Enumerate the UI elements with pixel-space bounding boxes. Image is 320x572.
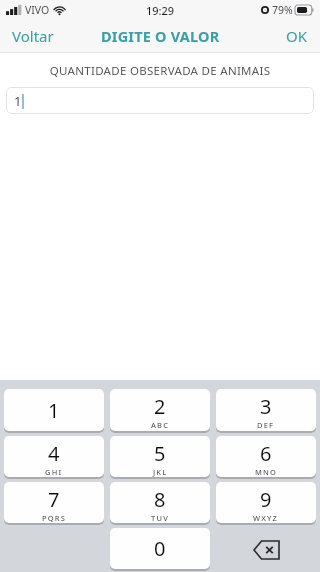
- button[interactable]: 8: [110, 482, 210, 523]
- staticText: QUANTIDADE OBSERVADA DE ANIMAIS: [0, 63, 320, 79]
- staticText: 3: [260, 393, 272, 420]
- staticText: JKL: [153, 467, 168, 477]
- staticText: OK: [286, 26, 308, 46]
- staticText: 1: [48, 397, 60, 424]
- button[interactable]: Backspace: [216, 528, 316, 571]
- button[interactable]: 7: [4, 482, 104, 523]
- staticText: 4: [48, 440, 60, 467]
- button[interactable]: 2: [110, 389, 210, 431]
- staticText: TUV: [151, 513, 169, 523]
- staticText: 0: [154, 535, 166, 562]
- button[interactable]: 1: [4, 389, 104, 431]
- staticText: 5: [154, 440, 166, 467]
- staticText: MNO: [255, 467, 278, 477]
- staticText: 7: [48, 486, 60, 513]
- staticText: 2: [154, 393, 166, 420]
- button[interactable]: 9: [216, 482, 316, 523]
- button[interactable]: 5: [110, 436, 210, 477]
- staticText: DIGITE O VALOR: [101, 26, 220, 46]
- button[interactable]: OK: [274, 22, 320, 50]
- button[interactable]: 6: [216, 436, 316, 477]
- button[interactable]: 3: [216, 389, 316, 431]
- staticText: 79%: [272, 3, 293, 17]
- button[interactable]: 0: [110, 528, 210, 569]
- staticText: 19:29: [146, 3, 175, 18]
- staticText: Voltar: [12, 26, 54, 46]
- staticText: 6: [260, 440, 272, 467]
- staticText: 8: [154, 486, 166, 513]
- staticText: 1: [14, 92, 22, 110]
- staticText: 9: [260, 486, 272, 513]
- staticText: WXYZ: [253, 513, 279, 523]
- staticText: GHI: [45, 467, 63, 477]
- staticText: ABC: [151, 420, 170, 430]
- button[interactable]: 4: [4, 436, 104, 477]
- staticText: VIVO: [25, 3, 50, 17]
- button[interactable]: 1: [6, 87, 314, 114]
- button[interactable]: Voltar: [0, 22, 66, 50]
- staticText: PQRS: [42, 513, 67, 523]
- staticText: DEF: [257, 420, 275, 430]
